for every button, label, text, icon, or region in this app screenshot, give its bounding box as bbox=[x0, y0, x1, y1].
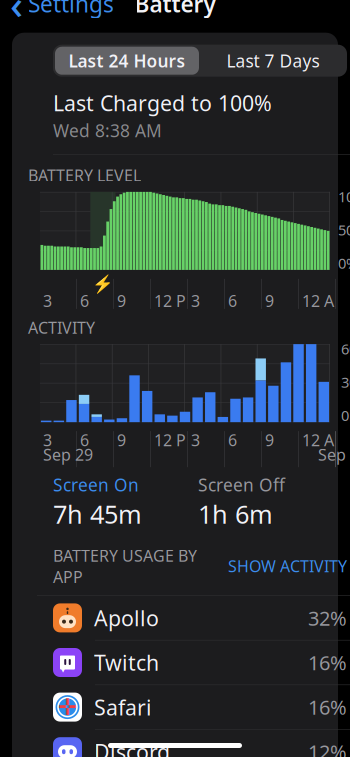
button[interactable]: Apollo bbox=[37, 596, 350, 640]
staticText: ▾ bbox=[60, 662, 66, 675]
staticText: ACTIVITY bbox=[28, 317, 95, 338]
button[interactable]: ▾ bbox=[37, 640, 350, 684]
staticText: 16% bbox=[308, 694, 347, 720]
staticText: 7h 45m bbox=[53, 497, 142, 531]
staticText: 9 bbox=[265, 290, 274, 311]
staticText: 16% bbox=[308, 649, 347, 676]
staticText: 12 P bbox=[154, 290, 186, 311]
staticText: 9 bbox=[265, 429, 274, 451]
staticText: Safari bbox=[94, 693, 152, 721]
staticText: 1h 6m bbox=[198, 497, 273, 531]
button[interactable]: ✛ bbox=[37, 685, 350, 729]
staticText: 6 bbox=[80, 290, 89, 311]
staticText: 60m bbox=[341, 339, 350, 359]
staticText: SHOW ACTIVITY bbox=[228, 555, 347, 577]
staticText: Wed 8:38 AM bbox=[53, 119, 162, 142]
staticText: 12 A bbox=[302, 290, 334, 311]
staticText: ‹ bbox=[10, 0, 23, 30]
staticText: 6 bbox=[228, 429, 237, 451]
button[interactable]: ‹ bbox=[0, 0, 124, 24]
staticText: BATTERY LEVEL bbox=[28, 165, 141, 186]
staticText: Last Charged to 100% bbox=[53, 89, 272, 117]
staticText: 30m bbox=[341, 372, 350, 392]
staticText: 0m bbox=[341, 406, 350, 425]
staticText: 12% bbox=[308, 738, 347, 757]
staticText: 3 bbox=[191, 290, 200, 311]
staticText: 100% bbox=[338, 187, 350, 206]
button[interactable]: Last 7 Days bbox=[201, 47, 345, 75]
staticText: Discord bbox=[94, 737, 170, 757]
staticText: 9 bbox=[117, 290, 126, 311]
staticText: 0% bbox=[338, 253, 350, 273]
staticText: 3 bbox=[191, 429, 200, 451]
button[interactable]: SHOW ACTIVITY bbox=[228, 555, 347, 577]
staticText: 3 bbox=[43, 429, 52, 451]
staticText: ⚡ bbox=[92, 274, 114, 294]
staticText: Apollo bbox=[94, 604, 159, 632]
staticText: Settings bbox=[28, 0, 114, 19]
staticText: 6 bbox=[80, 429, 89, 451]
staticText: Screen Off bbox=[198, 473, 285, 496]
staticText: Sep 29 bbox=[43, 444, 93, 465]
staticText: Twitch bbox=[94, 648, 159, 677]
staticText: 12 P bbox=[154, 429, 186, 451]
button[interactable]: Discord bbox=[37, 730, 350, 757]
staticText: Screen On bbox=[53, 473, 139, 496]
staticText: Battery bbox=[134, 0, 215, 19]
staticText: 32% bbox=[308, 605, 347, 631]
staticText: Last 7 Days bbox=[226, 49, 319, 72]
staticText: 50% bbox=[338, 220, 350, 240]
staticText: Last 24 Hours bbox=[68, 49, 185, 72]
staticText: 12 A bbox=[302, 429, 334, 451]
staticText: 3 bbox=[43, 290, 52, 311]
staticText: 9 bbox=[117, 429, 126, 451]
staticText: 6 bbox=[228, 290, 237, 311]
button[interactable]: Last 24 Hours bbox=[55, 47, 199, 75]
staticText: Sep 30 bbox=[318, 444, 350, 465]
staticText: BATTERY USAGE BY APP bbox=[53, 545, 197, 587]
staticText: ✛ bbox=[58, 694, 77, 720]
